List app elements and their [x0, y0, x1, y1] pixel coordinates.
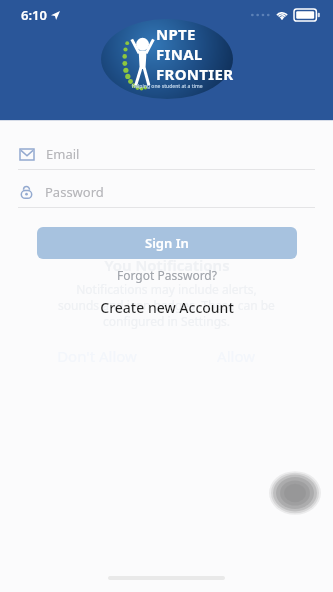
- staticText: NPTE: [156, 24, 196, 44]
- button[interactable]: Forgot Password?: [0, 267, 333, 283]
- staticText: FRONTIER: [156, 64, 234, 84]
- staticText: “NPTE” Would Like to Send: [70, 232, 264, 252]
- staticText: Forgot Password?: [117, 267, 217, 283]
- staticText: Notifications may include alerts,: [76, 281, 257, 297]
- button[interactable]: Create new Account: [0, 298, 333, 317]
- staticText: configured in Settings.: [103, 313, 230, 329]
- staticText: sounds and icon badges. These can be: [58, 297, 275, 313]
- staticText: You Notifications: [104, 255, 230, 275]
- staticText: Create new Account: [100, 298, 234, 317]
- button[interactable]: Password: [20, 180, 313, 204]
- staticText: FINAL: [156, 44, 203, 64]
- staticText: Email: [46, 145, 80, 163]
- staticText: 6:10: [21, 6, 47, 24]
- staticText: helping one student at a time: [132, 83, 203, 90]
- staticText: Password: [45, 183, 104, 201]
- button[interactable]: Sign In: [37, 227, 297, 259]
- button[interactable]: Email: [20, 142, 313, 166]
- staticText: Sign In: [145, 234, 189, 252]
- button[interactable]: Assistive touch: [270, 472, 320, 514]
